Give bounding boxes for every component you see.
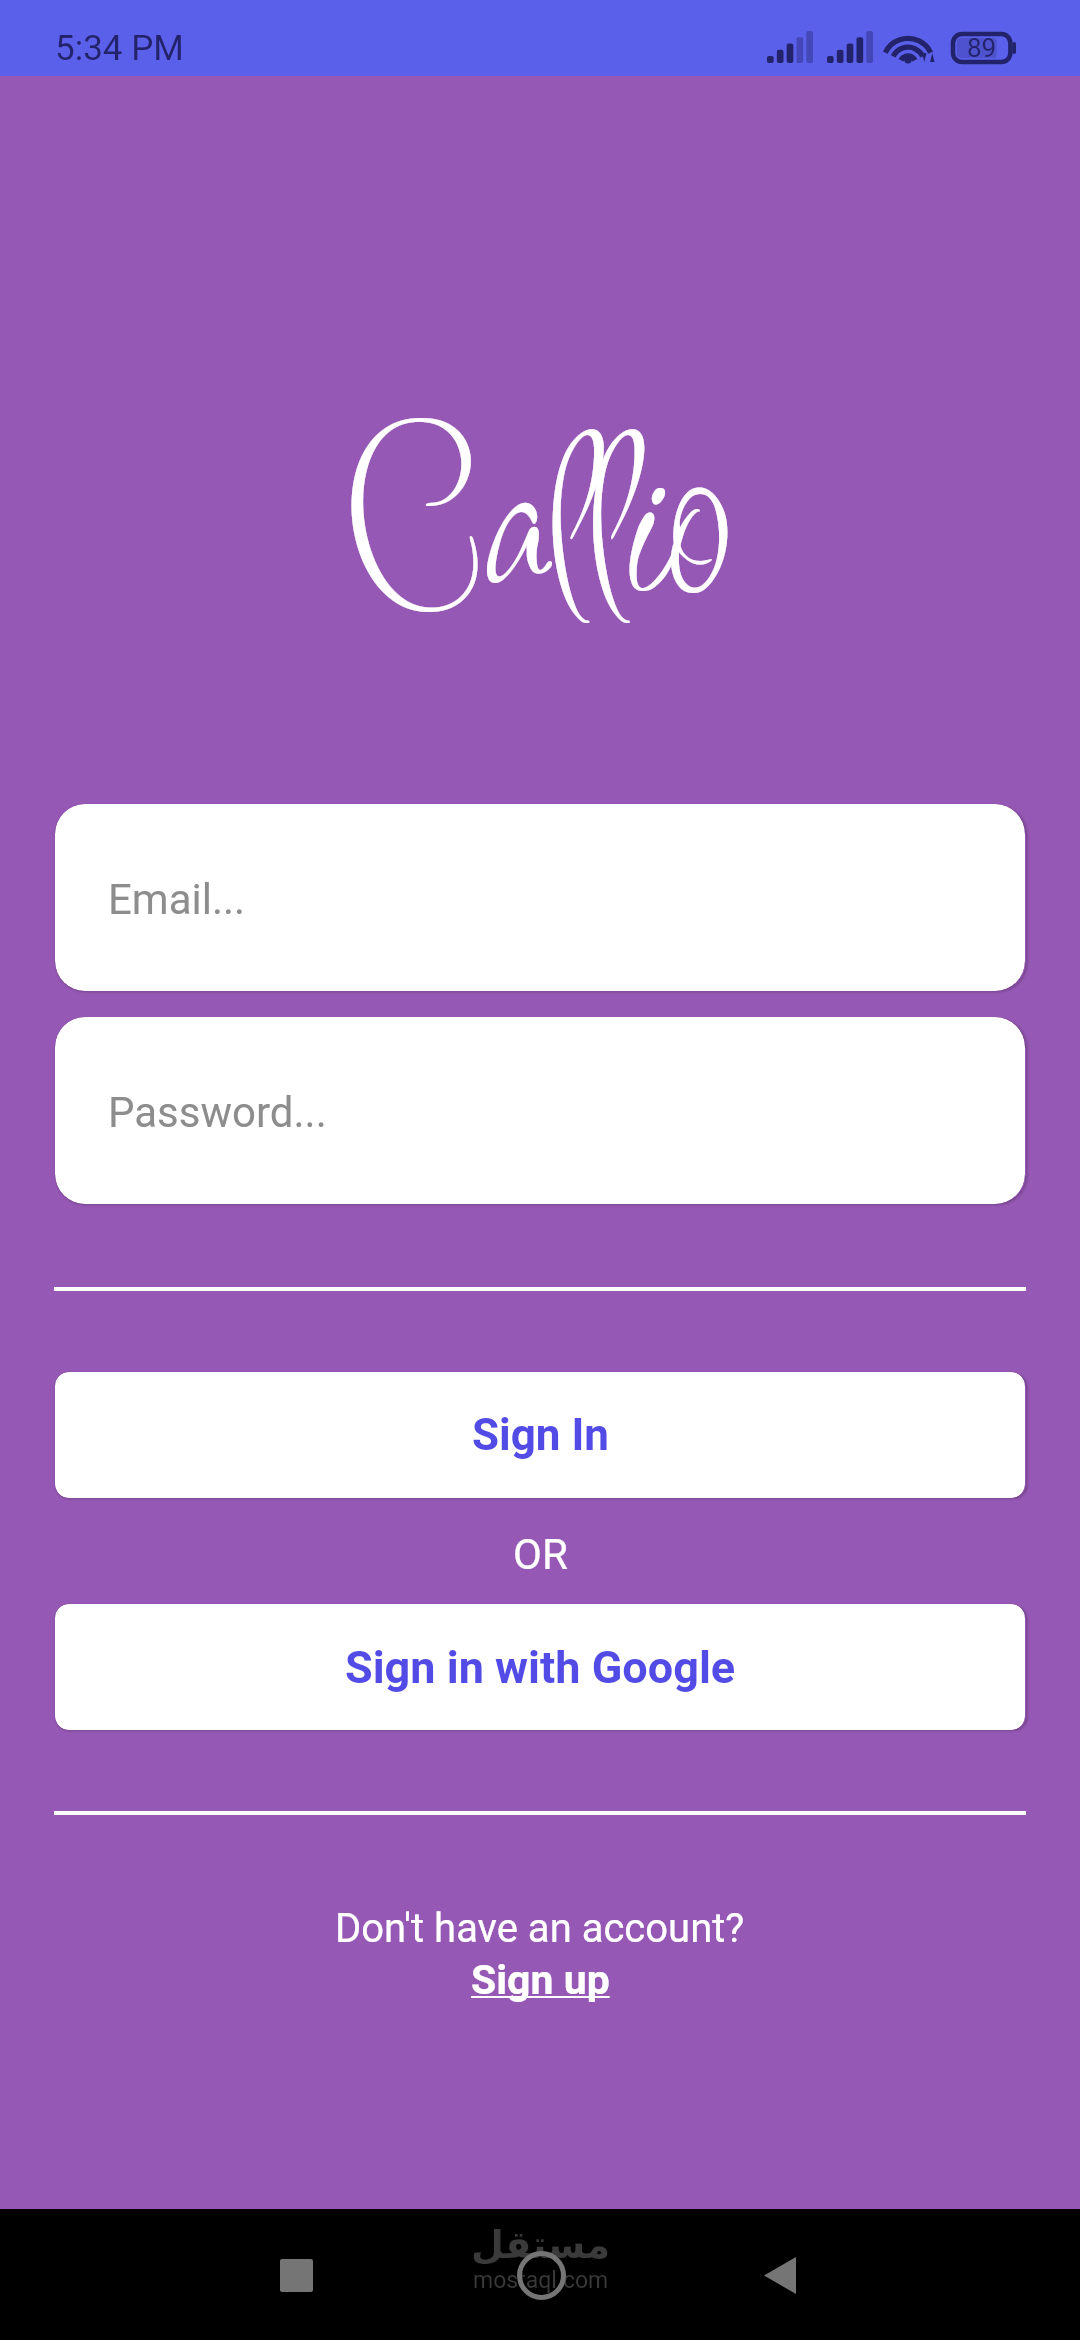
staticText: 89 (967, 33, 997, 63)
staticText: Password... (108, 1088, 327, 1137)
staticText: Don't have an account? (335, 1905, 745, 1952)
staticText: مستقل (471, 2223, 610, 2267)
button[interactable]: Sign up (471, 1956, 610, 2004)
button[interactable]: Password... (55, 1017, 1025, 1204)
button[interactable]: Sign In (55, 1372, 1025, 1498)
button[interactable]: Home (487, 2221, 595, 2329)
button[interactable]: Recent apps (242, 2221, 350, 2329)
staticText: OR (513, 1530, 568, 1579)
button[interactable]: Email... (55, 804, 1025, 991)
button[interactable]: Sign in with Google (55, 1604, 1025, 1730)
staticText: Sign In (472, 1409, 609, 1461)
button[interactable]: Back (726, 2221, 834, 2329)
staticText: Sign in with Google (345, 1641, 736, 1694)
staticText: Sign up (471, 1956, 610, 2004)
staticText: 5:34 PM (55, 28, 184, 69)
staticText: Callio (352, 376, 729, 681)
staticText: Email... (108, 875, 246, 924)
staticText: mostaql.com (473, 2267, 609, 2294)
